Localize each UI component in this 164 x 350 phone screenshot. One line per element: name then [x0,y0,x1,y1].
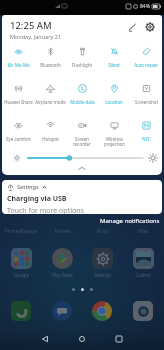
button[interactable]: Google [1,248,41,278]
staticText: Airplane mode [35,99,66,105]
staticText: Auto-rotate [134,62,158,68]
staticText: Touch for more options [7,206,84,214]
button[interactable]: Home [72,329,92,349]
button[interactable]: NFC [130,121,162,151]
button[interactable]: Messages [42,301,82,321]
button[interactable]: Location [98,84,130,114]
button[interactable]: Huawei Share [2,84,34,114]
button[interactable]: Auto-rotate [130,47,162,77]
button[interactable]: Settings [82,248,122,278]
button[interactable]: Edit [124,19,140,35]
button[interactable]: Back [35,329,55,349]
staticText: Screenshot [135,99,158,105]
button[interactable]: Eye comfort [2,121,34,151]
staticText: Silent [108,62,120,68]
button[interactable]: Screen recorder [66,121,98,151]
button[interactable]: Wireless projection [98,121,130,151]
button[interactable]: Silent [98,47,130,77]
button[interactable]: Settings [2,180,162,214]
button[interactable]: Manage notifications [96,214,164,228]
staticText: Wireless projection [104,136,125,147]
button[interactable]: Bluetooth [34,47,66,77]
button[interactable]: Chrome [82,301,122,321]
button[interactable]: Recents [109,329,129,349]
staticText: Monday, January 21 [10,33,61,40]
staticText: Video [137,228,149,234]
staticText: Huawei Share [4,99,33,105]
button[interactable]: Mr. Mo-Mo [2,47,34,77]
button[interactable]: Camera [123,301,163,321]
staticText: Flashlight [72,62,92,68]
staticText: Google [14,272,29,278]
button[interactable]: Hotspot [34,121,66,151]
button[interactable]: Play Store [42,248,82,278]
staticText: 12:25 AM [10,19,52,32]
staticText: Bluetooth [40,62,61,68]
button[interactable]: Screenshot [130,84,162,114]
button[interactable]: Flashlight [66,47,98,77]
staticText: Mr. Mo-Mo [7,62,30,68]
staticText: Phone Manager [5,228,38,234]
staticText: Screen recorder [73,136,91,147]
staticText: Location [105,99,123,105]
staticText: Gallery [136,272,151,278]
staticText: Settings [94,272,111,278]
staticText: Mobile data [70,99,95,105]
button[interactable]: Airplane mode [34,84,66,114]
button[interactable]: Settings [142,19,158,35]
staticText: 84% [140,3,150,10]
staticText: Charging via USB [7,194,67,204]
button[interactable]: Gallery [123,248,163,278]
button[interactable]: Phone [1,301,41,321]
staticText: Themes [54,228,71,234]
staticText: Eye comfort [6,136,31,142]
button[interactable]: Mobile data [66,84,98,114]
staticText: Manage notifications [100,217,160,225]
staticText: NFC [142,136,151,142]
staticText: Settings [17,183,39,191]
staticText: Music [96,228,109,234]
staticText: Play Store [52,272,73,278]
staticText: Hotspot [42,136,59,142]
